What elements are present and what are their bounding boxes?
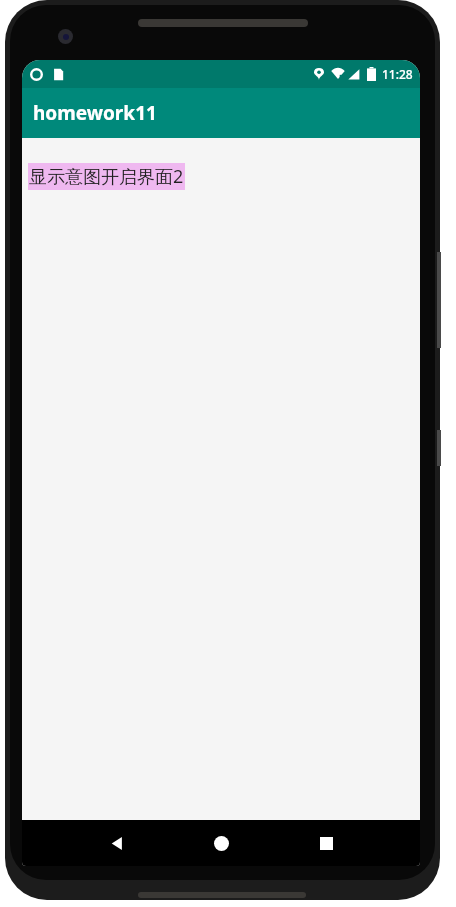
- staticText: 11:28: [382, 66, 413, 82]
- button[interactable]: Home: [201, 823, 241, 863]
- button[interactable]: Recent apps: [306, 823, 346, 863]
- button[interactable]: 显示意图开启界面2: [28, 163, 185, 190]
- button[interactable]: Back: [96, 823, 136, 863]
- staticText: homework11: [33, 100, 157, 126]
- staticText: 显示意图开启界面2: [29, 164, 184, 189]
